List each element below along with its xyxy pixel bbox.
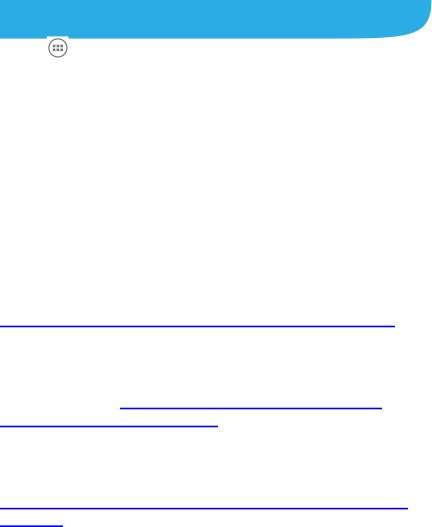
button[interactable]: Menu — [47, 37, 69, 59]
button[interactable]: Link five — [0, 511, 63, 527]
button[interactable]: Link four — [0, 494, 408, 510]
button[interactable]: Link one — [0, 311, 395, 327]
button[interactable]: Link two — [120, 393, 382, 409]
button[interactable]: Link three — [0, 411, 218, 427]
